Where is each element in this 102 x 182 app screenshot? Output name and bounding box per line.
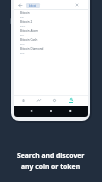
button[interactable]: Bitcoin Diamond	[14, 46, 88, 55]
staticText: BCA	[20, 34, 25, 37]
button[interactable]	[66, 95, 76, 106]
staticText: Bitcoin Cash	[20, 38, 38, 42]
staticText: BTC	[20, 16, 24, 19]
staticText: Bitcoin Atom	[20, 29, 39, 33]
staticText: BTC2	[20, 25, 26, 28]
staticText: Bitcoin	[20, 11, 30, 15]
button[interactable]: Bitcoin Cash	[14, 37, 88, 46]
button[interactable]	[49, 95, 59, 106]
staticText: Bitcoin 2	[20, 20, 33, 24]
button[interactable]	[34, 95, 44, 106]
staticText: Search and discover	[17, 151, 85, 160]
button[interactable]: Bitcoin	[14, 10, 88, 19]
button[interactable]: Bitcoin Atom	[14, 28, 88, 37]
staticText: Bitcoin Diamond	[20, 47, 44, 51]
staticText: BCD	[20, 52, 25, 55]
staticText: bitcoi	[29, 4, 37, 8]
staticText: any coin or token	[21, 162, 81, 171]
staticText: BCH	[20, 43, 25, 46]
button[interactable]: bitcoi	[14, 0, 88, 10]
button[interactable]	[18, 95, 28, 106]
button[interactable]: Bitcoin 2	[14, 19, 88, 28]
